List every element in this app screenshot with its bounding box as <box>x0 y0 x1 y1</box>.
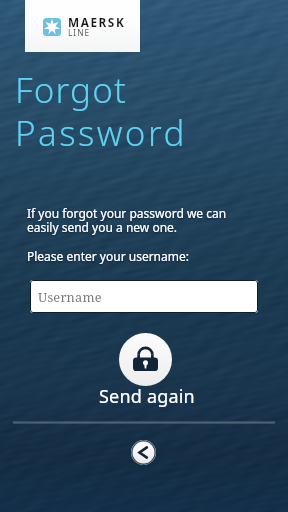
button[interactable]: Send again <box>0 333 288 411</box>
staticText: MAERSK <box>68 14 126 30</box>
staticText: If you forgot your password we can easil… <box>27 205 227 235</box>
staticText: Send again <box>99 384 195 409</box>
button[interactable]: Username input <box>30 280 258 313</box>
staticText: LINE <box>68 27 91 38</box>
staticText: Forgot <box>15 66 127 114</box>
staticText: Password <box>15 109 187 157</box>
staticText: Please enter your username: <box>27 248 189 264</box>
button[interactable]: Back <box>131 440 156 465</box>
staticText: Username <box>38 288 102 305</box>
